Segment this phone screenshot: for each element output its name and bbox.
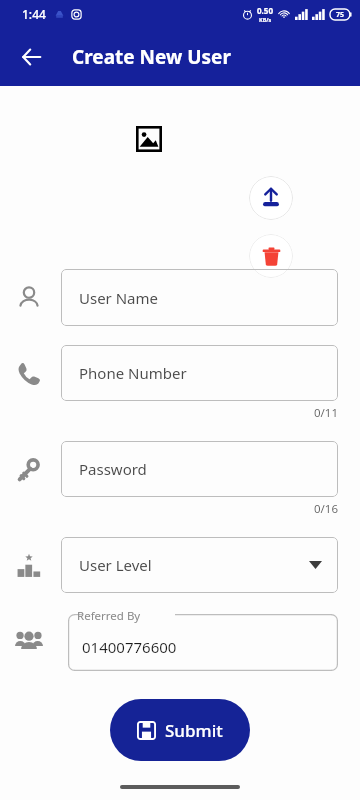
staticText: 0.50 [257, 5, 273, 16]
button[interactable]: Password [61, 441, 338, 497]
staticText: 1:44 [22, 6, 46, 22]
button[interactable]: Referred By [68, 614, 338, 671]
staticText: 0/16 [61, 501, 338, 517]
staticText: Phone Number [79, 363, 187, 383]
button[interactable]: User Name [61, 269, 338, 326]
staticText: 01400776600 [82, 637, 177, 657]
staticText: 0/11 [61, 405, 338, 421]
staticText: 75 [336, 10, 345, 20]
staticText: Submit [165, 719, 223, 742]
button[interactable]: Submit [110, 699, 250, 761]
staticText: Referred By [77, 608, 141, 624]
button[interactable]: Phone Number [61, 345, 338, 401]
staticText: Password [79, 459, 147, 479]
other: User [14, 283, 44, 313]
button[interactable]: User Level [61, 537, 338, 593]
button[interactable]: Back [10, 35, 54, 79]
other: Referred by [14, 626, 44, 656]
staticText: KB/s [259, 16, 272, 23]
staticText: User Level [79, 555, 152, 575]
button[interactable]: Upload image [249, 176, 293, 220]
other: Password [14, 455, 44, 485]
button[interactable]: Profile image [134, 124, 164, 154]
staticText: Create New User [72, 44, 231, 70]
other: User level [14, 551, 44, 581]
other: Phone [14, 359, 44, 389]
staticText: User Name [79, 288, 159, 308]
button[interactable]: Delete image [249, 234, 293, 278]
